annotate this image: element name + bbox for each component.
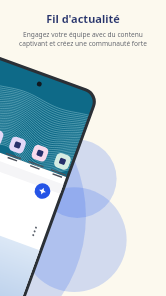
staticText: Fil d'actualité <box>0 11 166 26</box>
staticText: Engagez votre équipe avec du contenu cap… <box>0 30 166 48</box>
